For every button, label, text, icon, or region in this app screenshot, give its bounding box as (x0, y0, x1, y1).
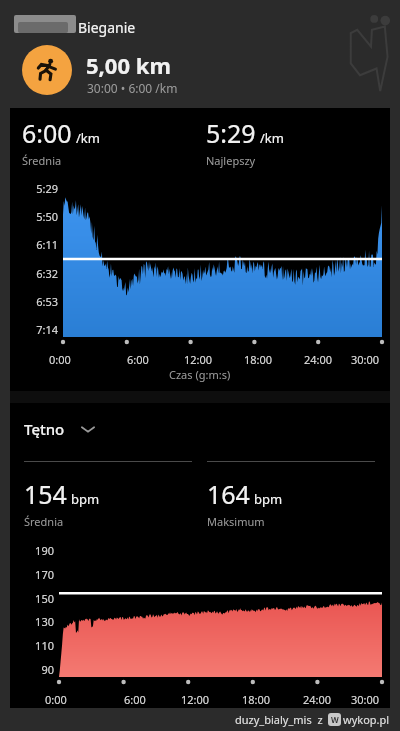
staticText: /km (260, 129, 284, 147)
staticText: 110 (35, 638, 54, 653)
staticText: Maksimum (207, 514, 265, 529)
staticText: 12:00 (184, 352, 213, 367)
staticText: Czas (g:m:s) (169, 367, 231, 382)
button[interactable]: Tętno (10, 403, 390, 708)
staticText: 0:00 (49, 352, 71, 367)
button[interactable]: Bieganie (22, 45, 72, 95)
staticText: 6:00 (22, 116, 72, 150)
button[interactable]: Tętno (24, 419, 97, 439)
staticText: 5:29 (206, 116, 256, 150)
staticText: 5:50 (36, 209, 58, 224)
staticText: 6:00 (124, 692, 146, 707)
staticText: Średnia (22, 153, 62, 168)
staticText: 7:14 (36, 322, 58, 337)
button[interactable]: 6:00 (10, 108, 390, 391)
staticText: 6:32 (36, 266, 58, 281)
staticText: 5:29 (36, 181, 58, 196)
other: Rozwiń (79, 420, 97, 438)
staticText: bpm (71, 490, 100, 508)
staticText: Tętno (24, 419, 65, 439)
staticText: 0:00 (45, 692, 67, 707)
staticText: wykop.pl (343, 712, 390, 727)
staticText: Bieganie (78, 18, 136, 37)
staticText: 154 (24, 477, 67, 511)
staticText: Średnia (24, 514, 64, 529)
staticText: 164 (207, 477, 250, 511)
staticText: 30:00 (351, 692, 380, 707)
staticText: 18:00 (244, 352, 273, 367)
staticText: 6:53 (36, 294, 58, 309)
staticText: 6:11 (36, 237, 58, 252)
staticText: 6:00 (127, 352, 149, 367)
staticText: bpm (254, 490, 283, 508)
staticText: 150 (35, 591, 54, 606)
staticText: 24:00 (303, 692, 332, 707)
staticText: 5,00 km (86, 50, 171, 80)
staticText: 170 (35, 567, 54, 582)
staticText: Najlepszy (206, 153, 256, 168)
staticText: 90 (41, 662, 54, 677)
staticText: 24:00 (304, 352, 333, 367)
staticText: 18:00 (242, 692, 271, 707)
staticText: 130 (35, 614, 54, 629)
staticText: 12:00 (181, 692, 210, 707)
staticText: /km (76, 129, 100, 147)
staticText: 30:00 (351, 352, 380, 367)
staticText: 190 (35, 543, 54, 558)
staticText: 30:00 • 6:00 /km (87, 80, 178, 96)
staticText: W (331, 714, 339, 725)
staticText: duzy_bialy_mis z (235, 712, 323, 727)
